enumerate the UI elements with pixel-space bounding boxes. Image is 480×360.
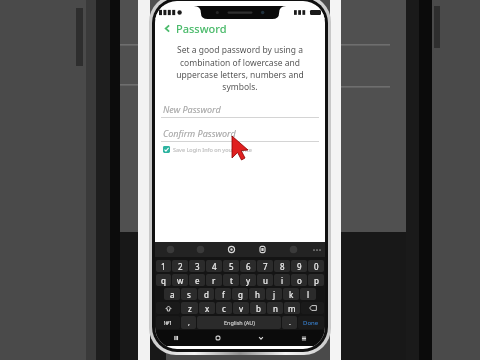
button[interactable]: e xyxy=(189,274,205,286)
button[interactable]: j xyxy=(266,288,282,300)
staticText: f xyxy=(222,289,225,300)
button[interactable]: 8 xyxy=(274,260,290,272)
button[interactable]: m xyxy=(284,302,300,314)
staticText: e xyxy=(195,275,200,286)
button[interactable]: Search xyxy=(278,242,309,257)
button[interactable]: Recents xyxy=(155,330,197,346)
staticText: i xyxy=(281,275,284,286)
button[interactable]: z xyxy=(181,302,198,314)
button[interactable]: w xyxy=(172,274,188,286)
button[interactable]: y xyxy=(240,274,256,286)
staticText: 8 xyxy=(280,261,285,272)
staticText: k xyxy=(289,289,294,300)
staticText: g xyxy=(238,289,243,300)
button[interactable]: 1 xyxy=(156,260,171,272)
button[interactable]: Back xyxy=(239,330,282,346)
staticText: m xyxy=(288,303,296,314)
staticText: b xyxy=(256,303,261,314)
button[interactable]: 4 xyxy=(206,260,222,272)
button[interactable]: c xyxy=(216,302,232,314)
staticText: t xyxy=(230,275,233,286)
staticText: Set a good password by using a combinati… xyxy=(168,44,312,92)
staticText: w xyxy=(177,275,184,286)
staticText: n xyxy=(273,303,278,314)
button[interactable]: i xyxy=(274,274,290,286)
button[interactable]: More options xyxy=(309,242,325,257)
staticText: 3 xyxy=(195,261,200,272)
button[interactable]: x xyxy=(199,302,215,314)
staticText: l xyxy=(307,289,310,300)
staticText: q xyxy=(161,275,166,286)
staticText: 5 xyxy=(229,261,234,272)
button[interactable]: q xyxy=(156,274,171,286)
button[interactable]: k xyxy=(283,288,299,300)
staticText: s xyxy=(187,289,191,300)
button[interactable]: 5 xyxy=(223,260,239,272)
button[interactable]: !#1 xyxy=(156,316,180,329)
button[interactable]: Done xyxy=(298,316,324,329)
button[interactable]: English (AU) xyxy=(197,316,281,329)
staticText: . xyxy=(289,318,291,328)
staticText: u xyxy=(263,275,268,286)
button[interactable]: l xyxy=(300,288,316,300)
button[interactable]: Home xyxy=(197,330,239,346)
staticText: 0 xyxy=(314,261,319,272)
staticText: 4 xyxy=(212,261,217,272)
button[interactable]: Confirm Password xyxy=(161,127,319,142)
staticText: 2 xyxy=(178,261,183,272)
button[interactable]: s xyxy=(181,288,197,300)
staticText: 7 xyxy=(263,261,268,272)
button[interactable]: v xyxy=(233,302,249,314)
button[interactable]: 2 xyxy=(172,260,188,272)
staticText: Save Login Info on your device xyxy=(173,146,252,153)
button[interactable]: Clipboard xyxy=(247,242,278,257)
button[interactable]: Backspace xyxy=(301,302,324,314)
staticText: New Password xyxy=(163,103,221,115)
staticText: 1 xyxy=(161,261,166,272)
staticText: Done xyxy=(303,319,319,327)
staticText: j xyxy=(273,289,276,300)
staticText: c xyxy=(222,303,226,314)
button[interactable]: 7 xyxy=(257,260,273,272)
button[interactable]: Keyboard xyxy=(282,330,325,346)
button[interactable]: 0 xyxy=(308,260,324,272)
button[interactable]: a xyxy=(164,288,180,300)
button[interactable]: b xyxy=(250,302,266,314)
staticText: y xyxy=(246,275,251,286)
button[interactable]: New Password xyxy=(161,103,319,118)
staticText: , xyxy=(188,318,190,328)
button[interactable]: f xyxy=(215,288,231,300)
button[interactable]: g xyxy=(232,288,248,300)
button[interactable]: n xyxy=(267,302,283,314)
staticText: h xyxy=(255,289,260,300)
staticText: Confirm Password xyxy=(163,127,236,139)
button[interactable]: p xyxy=(308,274,324,286)
button[interactable]: . xyxy=(282,316,297,329)
button[interactable]: u xyxy=(257,274,273,286)
staticText: Password xyxy=(176,21,227,36)
button[interactable]: 9 xyxy=(291,260,307,272)
button[interactable]: Shift xyxy=(156,302,180,314)
other: Back xyxy=(163,24,172,33)
button[interactable]: Save Login Info on your device xyxy=(163,146,317,153)
staticText: x xyxy=(205,303,210,314)
button[interactable]: Back xyxy=(155,19,325,38)
staticText: v xyxy=(239,303,244,314)
button[interactable]: h xyxy=(249,288,265,300)
button[interactable]: 3 xyxy=(189,260,205,272)
button[interactable]: , xyxy=(181,316,196,329)
staticText: 9 xyxy=(297,261,302,272)
button[interactable]: 6 xyxy=(240,260,256,272)
button[interactable]: GIF xyxy=(185,242,216,257)
staticText: English (AU) xyxy=(224,319,255,326)
staticText: !#1 xyxy=(164,319,173,326)
staticText: a xyxy=(170,289,175,300)
button[interactable]: o xyxy=(291,274,307,286)
button[interactable]: r xyxy=(206,274,222,286)
button[interactable]: d xyxy=(198,288,214,300)
button[interactable]: Emoji xyxy=(155,242,185,257)
button[interactable]: t xyxy=(223,274,239,286)
staticText: o xyxy=(297,275,302,286)
staticText: d xyxy=(204,289,209,300)
button[interactable]: Settings xyxy=(216,242,247,257)
